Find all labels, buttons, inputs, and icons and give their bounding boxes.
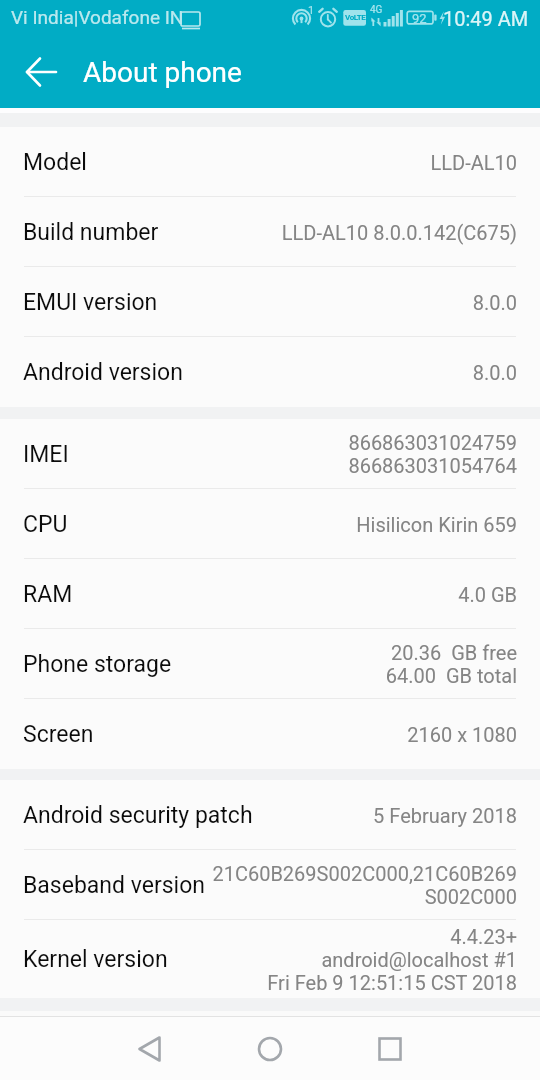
staticText: Android security patch xyxy=(23,802,253,829)
staticText: 2160 x 1080 xyxy=(407,723,517,746)
staticText: 64.00 GB total xyxy=(385,664,517,687)
button[interactable]: EMUI version xyxy=(0,267,540,337)
staticText: Fri Feb 9 12:51:15 CST 2018 xyxy=(267,971,517,994)
button[interactable]: CPU xyxy=(0,489,540,559)
staticText: VoLTE xyxy=(345,13,366,22)
button[interactable]: Screen xyxy=(0,699,540,769)
staticText: Build number xyxy=(23,219,159,246)
staticText: About phone xyxy=(83,56,242,89)
staticText: 4.4.23+ xyxy=(450,925,517,948)
button[interactable]: Android security patch xyxy=(0,780,540,850)
staticText: 1 xyxy=(308,4,315,17)
staticText: 4G xyxy=(370,4,383,16)
button[interactable]: RAM xyxy=(0,559,540,629)
staticText: Screen xyxy=(23,721,94,748)
staticText: Hisilicon Kirin 659 xyxy=(356,513,517,536)
staticText: 866863031054764 xyxy=(348,454,517,477)
staticText: Android version xyxy=(23,359,183,386)
button[interactable]: Back xyxy=(23,55,57,89)
staticText: Model xyxy=(23,149,87,176)
button[interactable]: Model xyxy=(0,127,540,197)
staticText: 92 xyxy=(412,11,427,26)
staticText: Baseband version xyxy=(23,872,205,899)
staticText: 10:49 AM xyxy=(443,7,529,30)
button[interactable]: IMEI xyxy=(0,419,540,489)
staticText: 8.0.0 xyxy=(472,291,517,314)
button[interactable]: Baseband version xyxy=(0,850,540,920)
staticText: 20.36 GB free xyxy=(391,641,517,664)
staticText: 4.0 GB xyxy=(458,583,517,606)
staticText: S002C000 xyxy=(424,885,517,908)
button[interactable]: Build number xyxy=(0,197,540,267)
button[interactable]: Home xyxy=(242,1021,298,1077)
staticText: android@localhost #1 xyxy=(321,948,517,971)
staticText: Kernel version xyxy=(23,946,168,973)
button[interactable]: Kernel version xyxy=(0,920,540,998)
button[interactable]: Back xyxy=(122,1021,178,1077)
button[interactable]: Phone storage xyxy=(0,629,540,699)
staticText: RAM xyxy=(23,581,73,608)
staticText: LLD-AL10 xyxy=(430,151,517,174)
staticText: EMUI version xyxy=(23,289,158,316)
staticText: 8.0.0 xyxy=(472,361,517,384)
button[interactable]: Android version xyxy=(0,337,540,407)
staticText: CPU xyxy=(23,511,68,538)
staticText: LLD-AL10 8.0.0.142(C675) xyxy=(281,221,517,244)
staticText: 21C60B269S002C000,21C60B269 xyxy=(212,862,517,885)
button[interactable]: Recents xyxy=(362,1021,418,1077)
staticText: Vi India|Vodafone IN xyxy=(11,6,184,28)
staticText: 5 February 2018 xyxy=(373,804,517,827)
staticText: IMEI xyxy=(23,441,69,468)
staticText: 866863031024759 xyxy=(348,431,517,454)
staticText: Phone storage xyxy=(23,651,172,678)
